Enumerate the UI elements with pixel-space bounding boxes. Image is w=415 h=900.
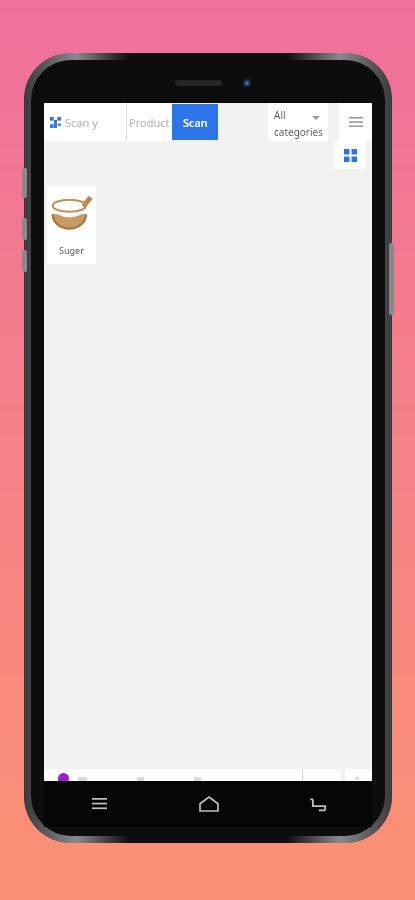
staticText: Scan <box>183 115 208 130</box>
button[interactable]: Menu <box>339 103 372 141</box>
staticText: Suger <box>59 244 84 256</box>
button[interactable]: Recent apps <box>44 781 154 827</box>
button[interactable]: Scan y <box>44 103 126 141</box>
button[interactable]: Scan <box>172 104 218 140</box>
staticText: categories <box>274 125 323 139</box>
staticText: Scan y <box>65 115 98 130</box>
button[interactable]: Grid view <box>334 141 366 169</box>
staticText: All <box>274 108 286 122</box>
staticText: Product <box>129 115 170 130</box>
button[interactable]: Home <box>154 781 263 827</box>
button[interactable]: Suger <box>47 186 96 264</box>
button[interactable]: Product <box>127 103 172 141</box>
button[interactable]: Back <box>263 781 372 827</box>
button[interactable]: All <box>268 103 328 141</box>
